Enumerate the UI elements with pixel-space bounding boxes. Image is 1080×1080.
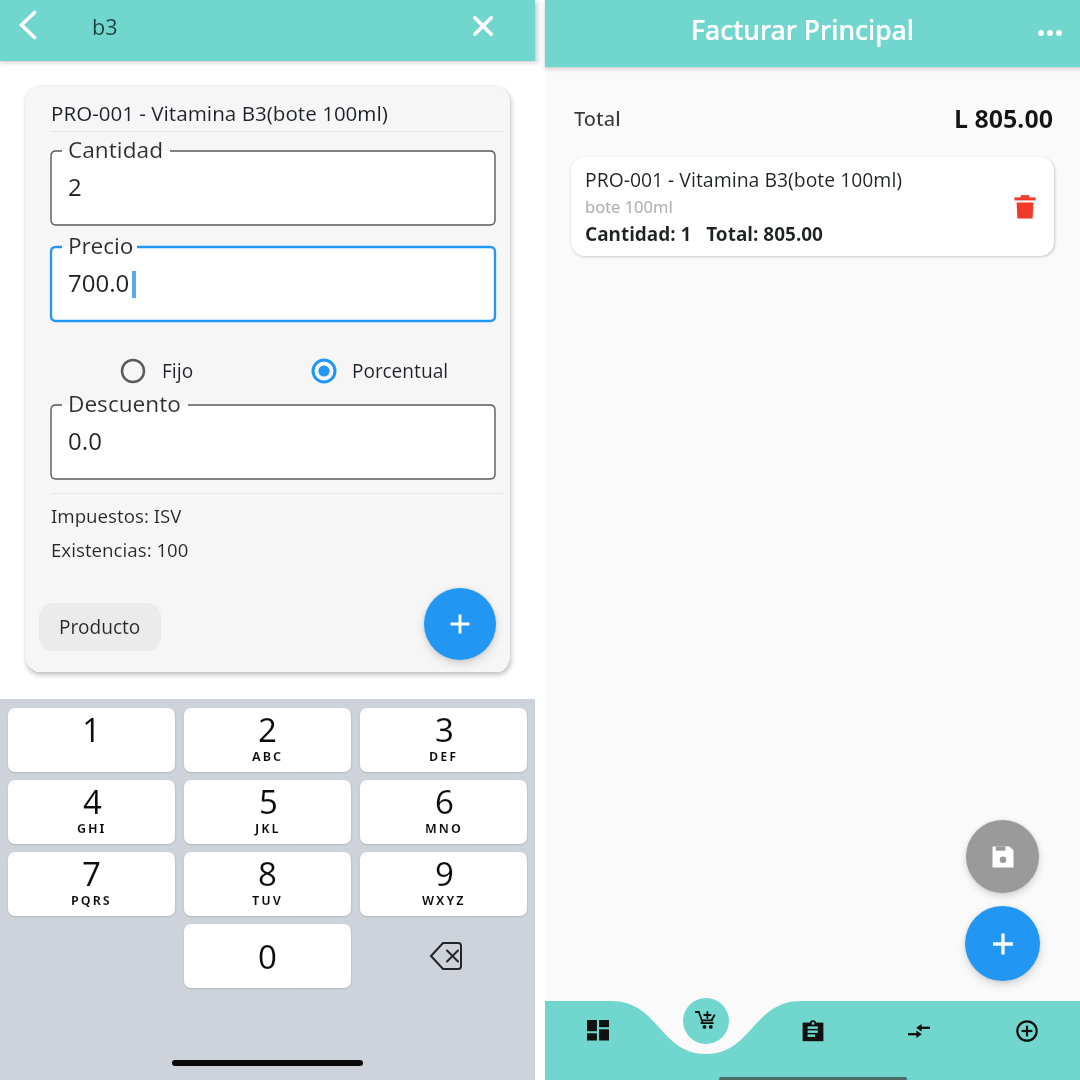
staticText: DEF bbox=[429, 748, 459, 765]
staticText: bote 100ml bbox=[585, 195, 673, 217]
staticText: 3 bbox=[435, 708, 454, 752]
button[interactable]: Save bbox=[966, 820, 1039, 893]
staticText: Porcentual bbox=[352, 358, 449, 384]
button[interactable]: 2 bbox=[184, 708, 351, 772]
staticText: PRO-001 - Vitamina B3(bote 100ml) bbox=[585, 166, 903, 192]
staticText: 4 bbox=[83, 780, 102, 824]
staticText: GHI bbox=[77, 820, 107, 837]
staticText: JKL bbox=[255, 820, 281, 837]
button[interactable]: Delete bbox=[1003, 185, 1047, 229]
button[interactable]: Dashboard bbox=[576, 1009, 620, 1053]
staticText: 2 bbox=[258, 708, 277, 752]
button[interactable]: Add item bbox=[965, 906, 1040, 981]
staticText: TUV bbox=[252, 892, 283, 909]
button[interactable]: Porcentual bbox=[304, 351, 449, 391]
button[interactable]: Add product bbox=[424, 588, 496, 660]
staticText: 700.0 bbox=[68, 266, 130, 299]
staticText: Cantidad bbox=[68, 134, 163, 165]
button[interactable]: 3 bbox=[360, 708, 527, 772]
staticText: Cantidad: 1 Total: 805.00 bbox=[585, 221, 823, 247]
staticText: MNO bbox=[425, 820, 463, 837]
button[interactable]: Producto bbox=[39, 603, 161, 651]
button[interactable]: PRO-001 - Vitamina B3(bote 100ml) bbox=[571, 157, 1054, 256]
staticText: 2 bbox=[68, 170, 82, 203]
staticText: PRO-001 - Vitamina B3(bote 100ml) bbox=[51, 99, 388, 127]
staticText: 0.0 bbox=[68, 424, 102, 457]
staticText: Descuento bbox=[68, 388, 181, 419]
button[interactable]: Close bbox=[459, 2, 507, 50]
staticText: Total bbox=[574, 105, 621, 132]
button[interactable]: 0 bbox=[184, 924, 351, 988]
staticText: Facturar Principal bbox=[691, 12, 914, 48]
staticText: 7 bbox=[82, 852, 101, 896]
staticText: 1 bbox=[82, 708, 101, 752]
button[interactable]: Fijo bbox=[113, 351, 194, 391]
button[interactable]: 1 bbox=[8, 708, 175, 772]
staticText: 0 bbox=[258, 934, 277, 979]
button[interactable]: Back bbox=[5, 2, 51, 48]
staticText: 8 bbox=[258, 852, 277, 896]
button[interactable]: 4 bbox=[8, 780, 175, 844]
button[interactable]: 9 bbox=[360, 852, 527, 916]
staticText: Existencias: 100 bbox=[51, 537, 189, 562]
staticText: PQRS bbox=[71, 892, 112, 909]
staticText: 5 bbox=[259, 780, 278, 824]
staticText: b3 bbox=[92, 12, 118, 41]
button[interactable]: Transfer bbox=[897, 1009, 941, 1053]
button[interactable]: Orders bbox=[791, 1009, 835, 1053]
button[interactable]: More options bbox=[1027, 10, 1073, 56]
staticText: 9 bbox=[435, 852, 454, 896]
staticText: Impuestos: ISV bbox=[51, 503, 182, 528]
staticText: ABC bbox=[252, 748, 283, 765]
staticText: Producto bbox=[59, 614, 141, 640]
staticText: 6 bbox=[435, 780, 454, 824]
staticText: L 805.00 bbox=[933, 101, 1053, 135]
staticText: Precio bbox=[68, 230, 134, 261]
button[interactable]: Cart bbox=[684, 999, 728, 1043]
button[interactable]: Backspace bbox=[414, 924, 478, 988]
button[interactable]: Precio bbox=[51, 235, 495, 321]
button[interactable]: Cantidad bbox=[51, 139, 495, 225]
button[interactable]: 6 bbox=[360, 780, 527, 844]
button[interactable]: Descuento bbox=[51, 393, 495, 479]
button[interactable]: Add bbox=[1005, 1009, 1049, 1053]
staticText: WXYZ bbox=[422, 892, 466, 909]
button[interactable]: 7 bbox=[8, 852, 175, 916]
button[interactable]: 8 bbox=[184, 852, 351, 916]
button[interactable]: 5 bbox=[184, 780, 351, 844]
staticText: Fijo bbox=[162, 358, 194, 384]
